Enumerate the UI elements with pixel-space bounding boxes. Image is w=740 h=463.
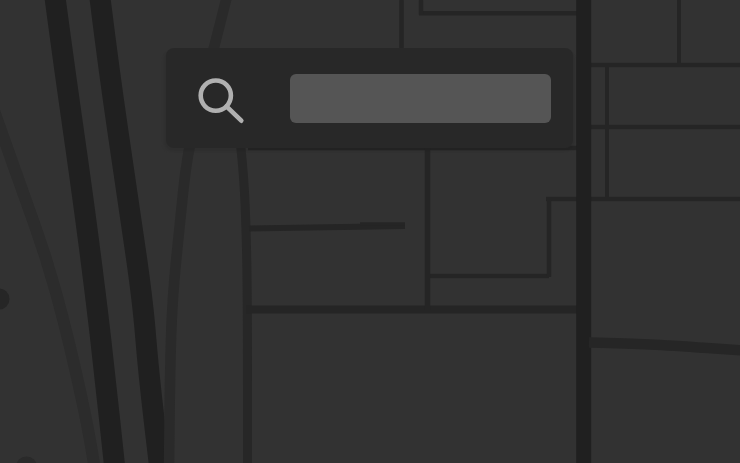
other: Search	[196, 74, 244, 122]
button[interactable]: Search	[166, 48, 573, 148]
